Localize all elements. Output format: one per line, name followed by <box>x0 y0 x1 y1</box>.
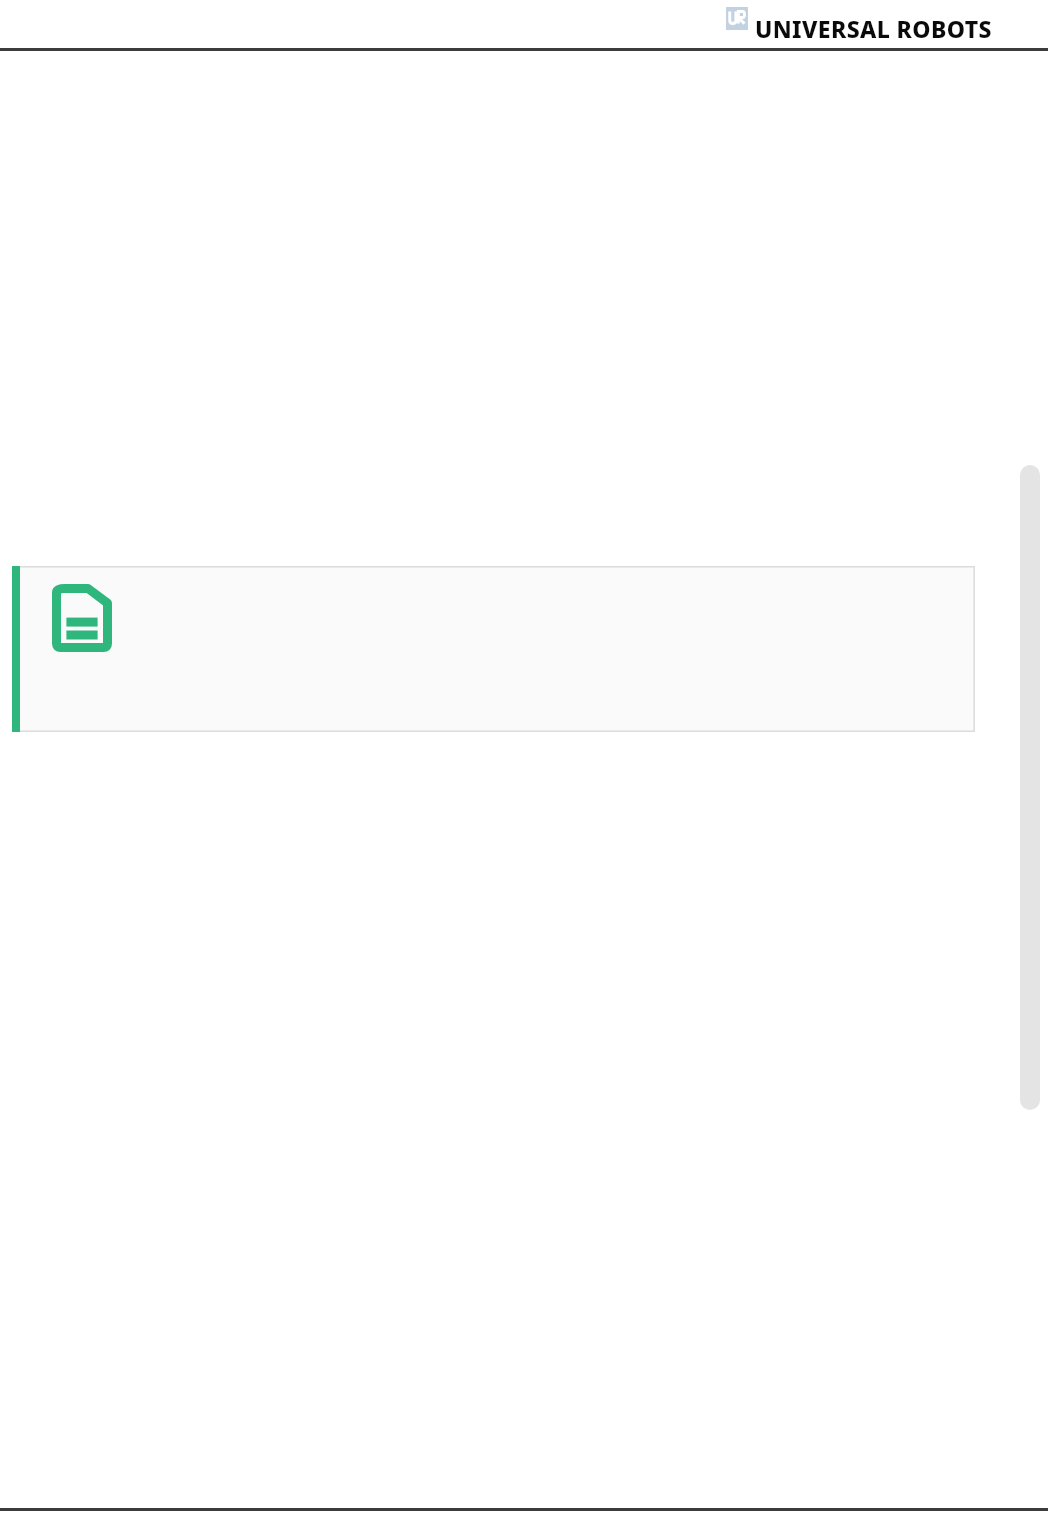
other: Document <box>52 584 112 652</box>
button[interactable]: Universal Robots <box>726 15 992 46</box>
staticText: UNIVERSAL ROBOTS <box>755 13 992 44</box>
button[interactable]: Document <box>12 566 975 732</box>
